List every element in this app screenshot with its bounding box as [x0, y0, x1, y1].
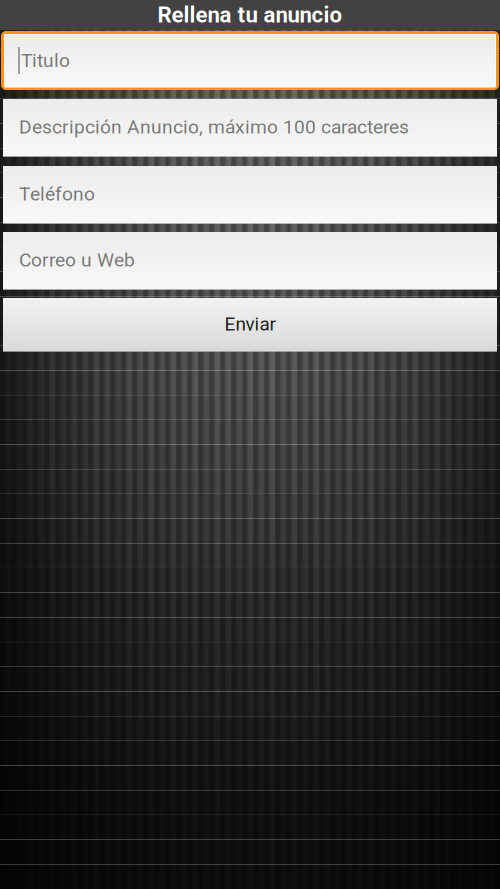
- button[interactable]: Descripción Anuncio, máximo 100 caracter…: [3, 99, 497, 155]
- staticText: Titulo: [21, 49, 70, 72]
- staticText: Correo u Web: [19, 249, 135, 271]
- button[interactable]: Enviar: [3, 298, 497, 350]
- button[interactable]: Teléfono: [3, 166, 497, 222]
- staticText: Enviar: [224, 313, 275, 335]
- staticText: Teléfono: [19, 183, 95, 205]
- staticText: Rellena tu anuncio: [157, 2, 342, 28]
- button[interactable]: Correo u Web: [3, 232, 497, 288]
- staticText: Descripción Anuncio, máximo 100 caracter…: [19, 116, 409, 138]
- button[interactable]: Titulo: [5, 35, 495, 86]
